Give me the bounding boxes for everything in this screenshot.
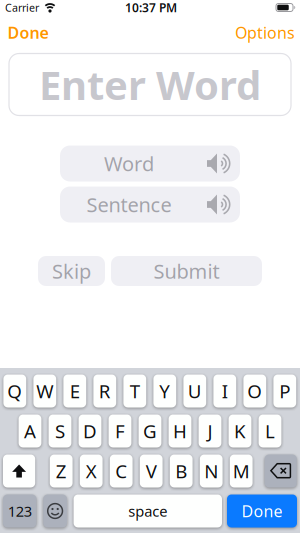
staticText: B: [175, 459, 187, 483]
staticText: Submit: [153, 258, 219, 284]
button[interactable]: Done: [227, 494, 297, 527]
button[interactable]: F: [109, 414, 131, 447]
button[interactable]: U: [183, 374, 206, 407]
button[interactable]: Skip: [38, 256, 105, 286]
staticText: J: [207, 419, 212, 443]
staticText: S: [55, 419, 65, 443]
button[interactable]: N: [200, 454, 223, 487]
button[interactable]: J: [199, 414, 221, 447]
button[interactable]: Emoji: [43, 494, 67, 527]
button[interactable]: V: [140, 454, 163, 487]
staticText: Z: [56, 459, 67, 483]
staticText: Q: [7, 379, 22, 403]
staticText: C: [115, 459, 127, 483]
staticText: L: [265, 419, 275, 443]
staticText: 10:37 PM: [125, 0, 177, 15]
button[interactable]: Enter Word: [9, 53, 291, 115]
staticText: Skip: [52, 258, 91, 284]
button[interactable]: R: [93, 374, 116, 407]
staticText: Word: [104, 150, 154, 177]
staticText: H: [173, 419, 187, 443]
staticText: N: [204, 459, 218, 483]
button[interactable]: I: [213, 374, 236, 407]
staticText: E: [70, 379, 80, 403]
staticText: space: [128, 501, 167, 521]
staticText: W: [36, 379, 53, 403]
staticText: U: [188, 379, 202, 403]
staticText: Sentence: [86, 191, 171, 218]
button[interactable]: D: [79, 414, 101, 447]
staticText: P: [279, 379, 290, 403]
staticText: Done: [7, 22, 48, 43]
staticText: V: [146, 459, 157, 483]
button[interactable]: W: [33, 374, 56, 407]
button[interactable]: Delete: [265, 454, 297, 487]
button[interactable]: Z: [50, 454, 73, 487]
button[interactable]: T: [123, 374, 146, 407]
button[interactable]: Sentence: [60, 186, 240, 222]
button[interactable]: C: [110, 454, 133, 487]
staticText: G: [143, 419, 157, 443]
button[interactable]: Space: [74, 494, 222, 527]
button[interactable]: Numbers: [3, 494, 36, 527]
staticText: X: [86, 459, 97, 483]
button[interactable]: A: [19, 414, 41, 447]
button[interactable]: H: [169, 414, 191, 447]
button[interactable]: Options: [235, 22, 295, 43]
button[interactable]: K: [229, 414, 251, 447]
button[interactable]: B: [170, 454, 193, 487]
button[interactable]: Word: [60, 145, 240, 181]
button[interactable]: E: [63, 374, 86, 407]
staticText: 123: [8, 501, 32, 521]
button[interactable]: S: [49, 414, 71, 447]
button[interactable]: M: [230, 454, 253, 487]
staticText: O: [247, 379, 262, 403]
button[interactable]: Q: [3, 374, 26, 407]
staticText: R: [99, 379, 111, 403]
staticText: A: [24, 419, 36, 443]
staticText: Enter Word: [39, 58, 261, 111]
staticText: Options: [235, 22, 295, 43]
staticText: K: [234, 419, 246, 443]
button[interactable]: Done: [7, 22, 48, 43]
staticText: M: [233, 459, 250, 483]
button[interactable]: Shift: [3, 454, 35, 487]
staticText: T: [130, 379, 140, 403]
staticText: I: [222, 379, 228, 403]
staticText: Carrier: [5, 0, 39, 15]
button[interactable]: Y: [153, 374, 176, 407]
button[interactable]: P: [273, 374, 296, 407]
button[interactable]: G: [139, 414, 161, 447]
staticText: D: [83, 419, 97, 443]
staticText: Done: [241, 500, 282, 522]
button[interactable]: O: [243, 374, 266, 407]
staticText: F: [115, 419, 125, 443]
button[interactable]: Submit: [111, 256, 262, 286]
button[interactable]: X: [80, 454, 103, 487]
staticText: Y: [159, 379, 170, 403]
button[interactable]: L: [259, 414, 281, 447]
